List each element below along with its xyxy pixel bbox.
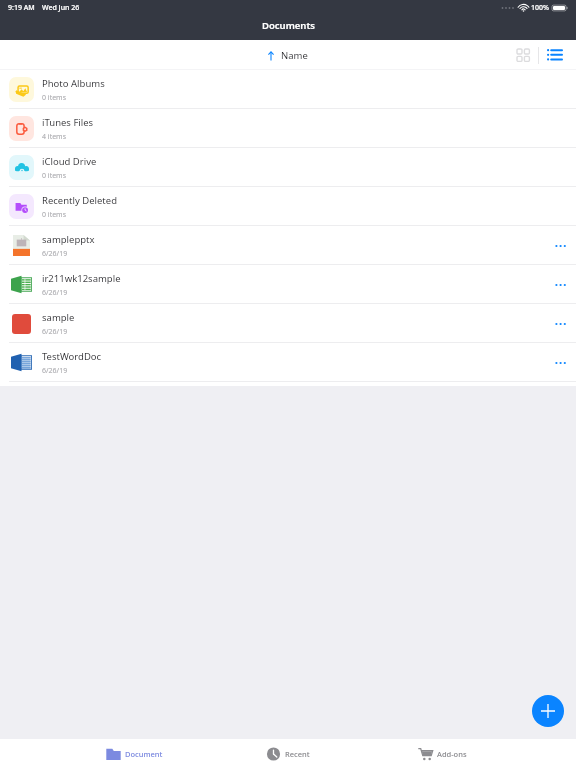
button[interactable]: Photo Albums: [0, 70, 576, 109]
button[interactable]: More options: [548, 312, 572, 336]
staticText: iTunes Files: [42, 116, 94, 129]
staticText: sample: [42, 311, 75, 324]
staticText: TestWordDoc: [42, 350, 102, 363]
staticText: 0 items: [42, 210, 67, 220]
staticText: 4 items: [42, 132, 67, 142]
button[interactable]: List view: [543, 44, 565, 66]
staticText: samplepptx: [42, 233, 95, 246]
button[interactable]: Name: [268, 49, 308, 62]
button[interactable]: TestWordDoc: [0, 343, 576, 382]
staticText: 6/26/19: [42, 366, 68, 376]
staticText: 9:19 AM: [8, 3, 35, 13]
button[interactable]: Add: [532, 695, 564, 727]
staticText: Photo Albums: [42, 77, 105, 90]
button[interactable]: ir211wk12sample: [0, 265, 576, 304]
staticText: Documents: [262, 19, 315, 32]
staticText: Wed Jun 26: [42, 3, 80, 13]
staticText: 0 items: [42, 93, 67, 103]
button[interactable]: More options: [548, 273, 572, 297]
button[interactable]: samplepptx: [0, 226, 576, 265]
button[interactable]: iCloud Drive: [0, 148, 576, 187]
button[interactable]: More options: [548, 351, 572, 375]
staticText: 100%: [531, 3, 549, 13]
button[interactable]: More options: [548, 234, 572, 258]
button[interactable]: iTunes Files: [0, 109, 576, 148]
button[interactable]: Add-ons: [365, 739, 519, 768]
button[interactable]: sample: [0, 304, 576, 343]
staticText: 6/26/19: [42, 327, 68, 337]
button[interactable]: Grid view: [512, 44, 534, 66]
button[interactable]: Recently Deleted: [0, 187, 576, 226]
staticText: 0 items: [42, 171, 67, 181]
staticText: Name: [281, 49, 308, 62]
staticText: 6/26/19: [42, 288, 68, 298]
staticText: Recent: [285, 749, 310, 759]
staticText: 6/26/19: [42, 249, 68, 259]
staticText: Recently Deleted: [42, 194, 117, 207]
staticText: Document: [125, 749, 163, 759]
staticText: ir211wk12sample: [42, 272, 121, 285]
staticText: Add-ons: [437, 749, 467, 759]
button[interactable]: Document: [57, 739, 211, 768]
button[interactable]: Recent: [211, 739, 365, 768]
staticText: iCloud Drive: [42, 155, 97, 168]
